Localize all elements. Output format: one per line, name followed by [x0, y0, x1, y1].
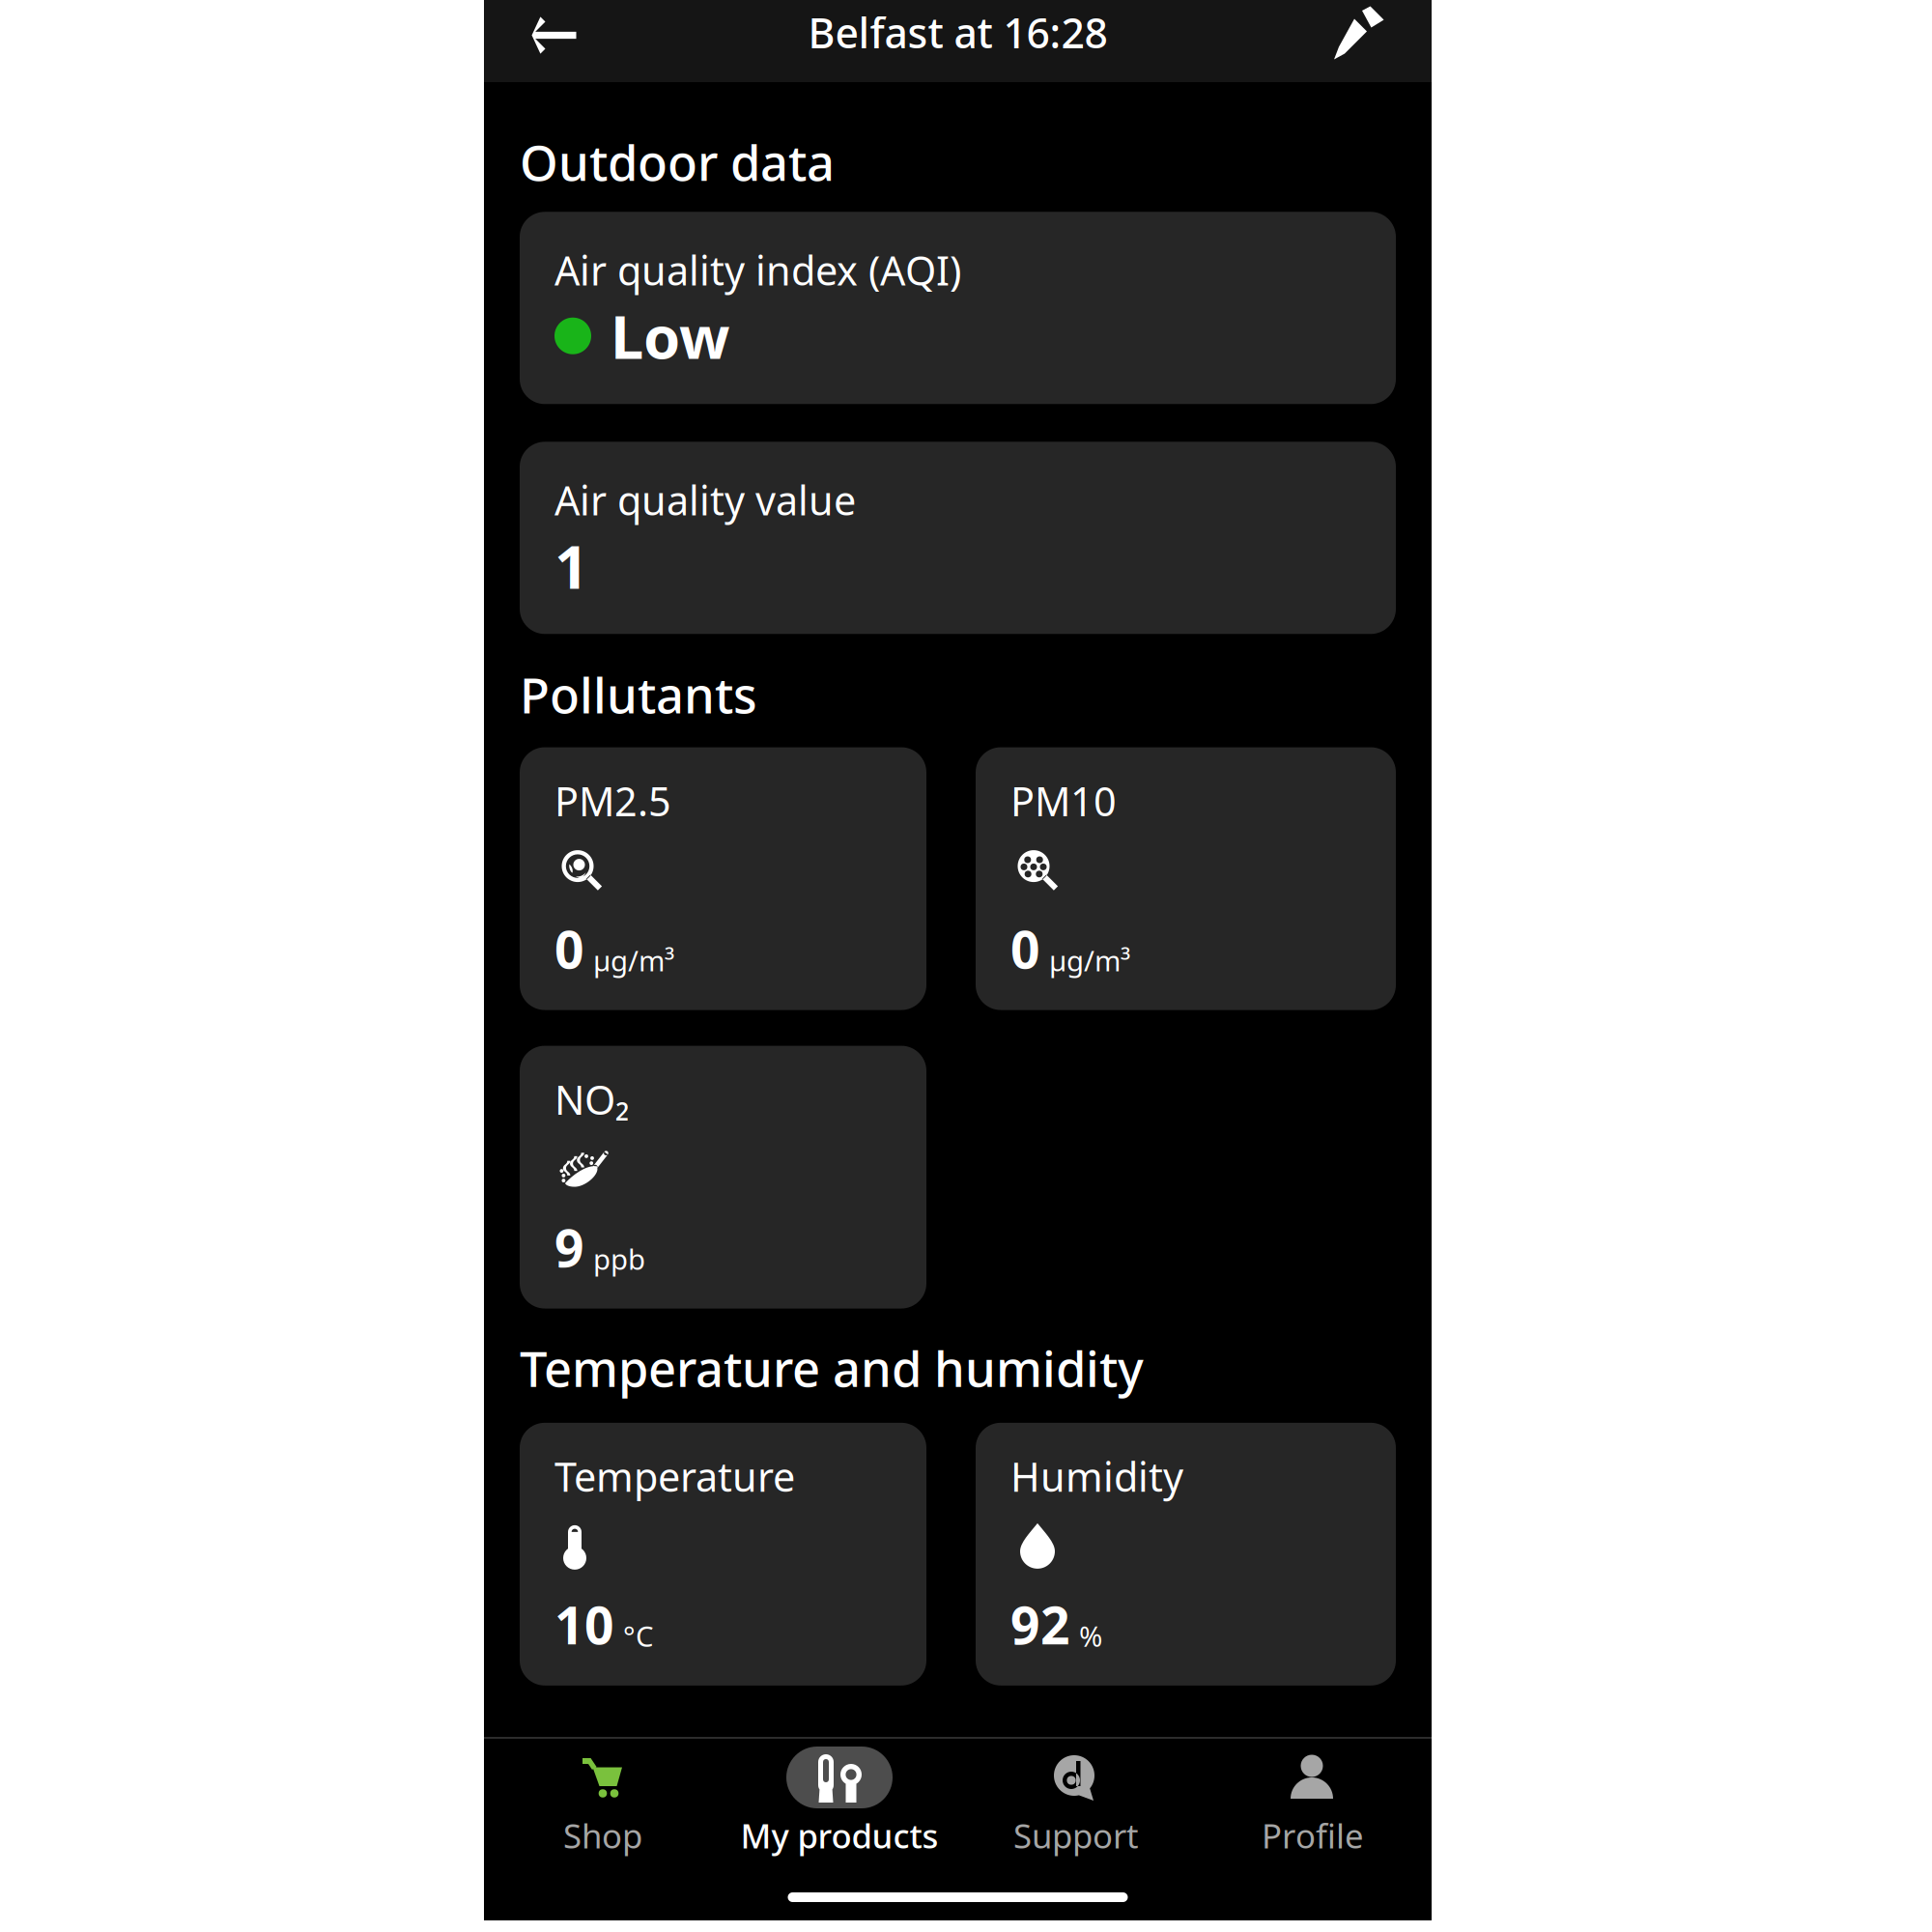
staticText: Support: [1013, 1813, 1139, 1858]
staticText: Temperature: [554, 1450, 795, 1503]
staticText: Humidity: [1010, 1450, 1183, 1503]
button[interactable]: Temperature: [520, 1423, 926, 1686]
staticText: µg/m³: [593, 941, 674, 979]
staticText: ppb: [593, 1240, 645, 1278]
staticText: 0: [1010, 915, 1040, 983]
staticText: Outdoor data: [520, 129, 835, 194]
staticText: Low: [611, 297, 730, 375]
button[interactable]: PM2.5: [520, 747, 926, 1010]
staticText: My products: [740, 1813, 938, 1858]
staticText: %: [1079, 1617, 1102, 1655]
button[interactable]: Shop: [484, 1747, 721, 1858]
button[interactable]: Air quality index (AQI): [520, 212, 1396, 404]
button[interactable]: PM10: [976, 747, 1396, 1010]
staticText: 92: [1010, 1590, 1070, 1658]
staticText: PM10: [1010, 774, 1117, 827]
button[interactable]: My products: [721, 1747, 958, 1858]
button[interactable]: Humidity: [976, 1423, 1396, 1686]
staticText: Profile: [1262, 1813, 1364, 1858]
staticText: Air quality value: [554, 473, 856, 526]
button[interactable]: Edit: [1287, 0, 1432, 82]
staticText: NO₂: [554, 1073, 629, 1126]
staticText: 10: [554, 1590, 614, 1658]
staticText: Belfast at 16:28: [808, 5, 1108, 60]
staticText: Temperature and humidity: [520, 1336, 1144, 1401]
staticText: 9: [554, 1213, 584, 1281]
button[interactable]: Back: [484, 0, 624, 82]
button[interactable]: Profile: [1194, 1747, 1431, 1858]
staticText: 1: [554, 526, 588, 605]
staticText: 0: [554, 915, 584, 983]
button[interactable]: Support: [958, 1747, 1194, 1858]
button[interactable]: Air quality value: [520, 442, 1396, 634]
staticText: Pollutants: [520, 662, 757, 727]
staticText: °C: [623, 1617, 654, 1655]
staticText: PM2.5: [554, 774, 671, 827]
button[interactable]: NO₂: [520, 1046, 926, 1309]
staticText: µg/m³: [1049, 941, 1130, 979]
staticText: Shop: [563, 1813, 642, 1858]
staticText: Air quality index (AQI): [554, 244, 961, 297]
